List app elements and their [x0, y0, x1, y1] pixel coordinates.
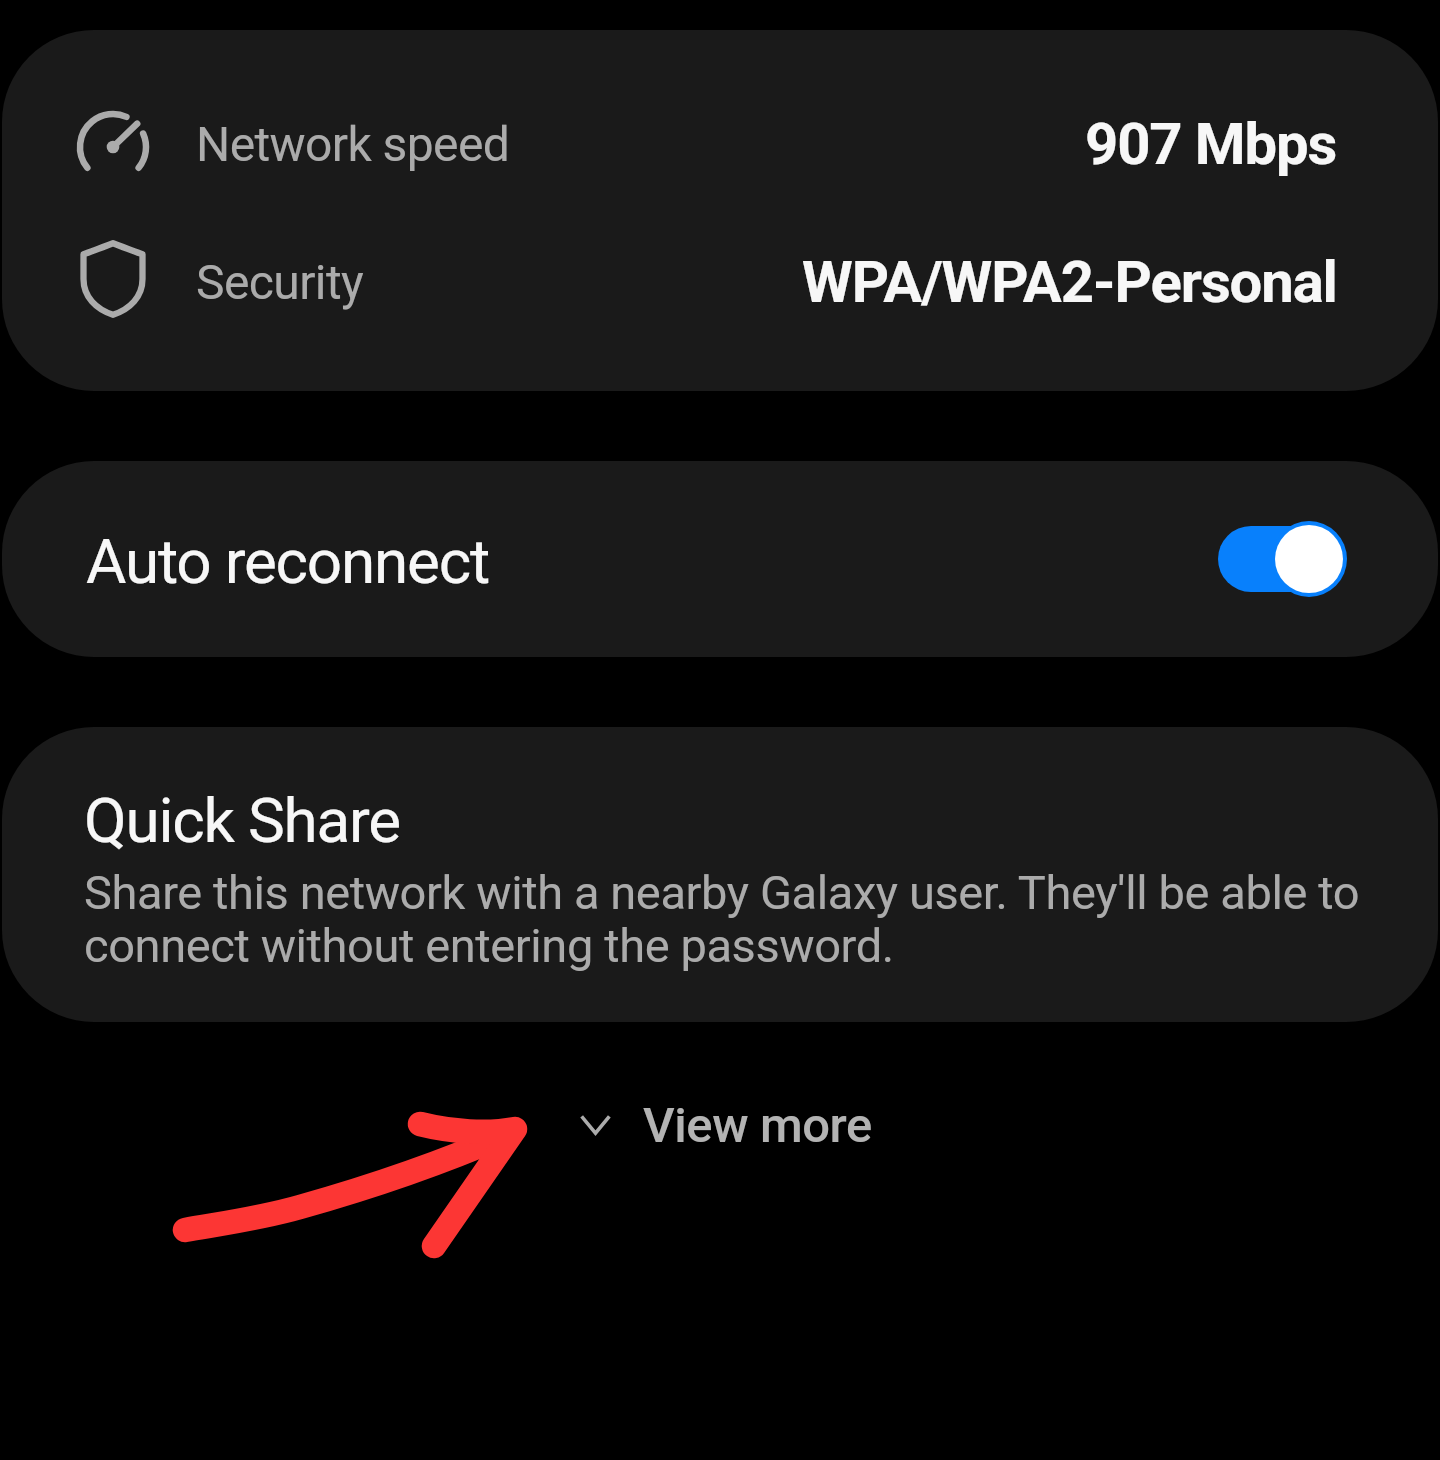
button[interactable]: Security — [2, 213, 1438, 351]
staticText: 907 Mbps — [1085, 110, 1337, 178]
staticText: WPA/WPA2-Personal — [802, 248, 1337, 316]
staticText: Share this network with a nearby Galaxy … — [84, 865, 1396, 973]
staticText: Security — [196, 254, 364, 310]
staticText: Auto reconnect — [86, 525, 490, 598]
button[interactable]: Network speed — [2, 75, 1438, 213]
staticText: Network speed — [196, 116, 510, 172]
button[interactable]: Auto reconnect — [2, 461, 1438, 657]
staticText: View more — [643, 1097, 872, 1154]
button[interactable]: Quick Share — [2, 727, 1438, 1022]
staticText: Quick Share — [84, 784, 400, 857]
button[interactable]: View more — [557, 1075, 896, 1176]
other: Security — [74, 237, 152, 327]
other: Network speed — [74, 99, 152, 189]
button[interactable]: Auto reconnect — [1218, 520, 1350, 602]
